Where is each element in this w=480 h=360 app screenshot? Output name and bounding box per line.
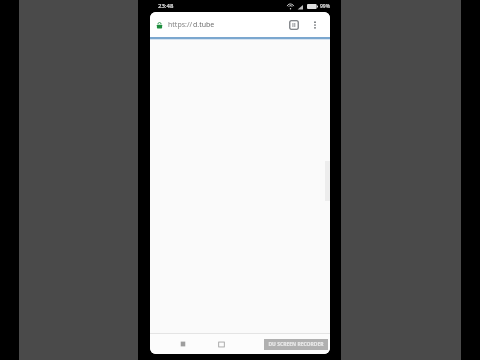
button[interactable]: DU SCREEN RECORDER <box>264 339 328 350</box>
staticText: 23:48 <box>158 2 174 10</box>
button[interactable]: https:// <box>156 15 286 35</box>
button[interactable]: Home <box>214 337 228 351</box>
button[interactable]: More options <box>306 16 324 34</box>
button[interactable]: Recent apps <box>176 337 190 351</box>
button[interactable]: Tab switcher <box>285 16 303 34</box>
staticText: 99% <box>320 3 330 10</box>
staticText: DU SCREEN RECORDER <box>268 341 324 348</box>
staticText: https:// <box>168 20 193 30</box>
staticText: d.tube <box>193 20 215 30</box>
